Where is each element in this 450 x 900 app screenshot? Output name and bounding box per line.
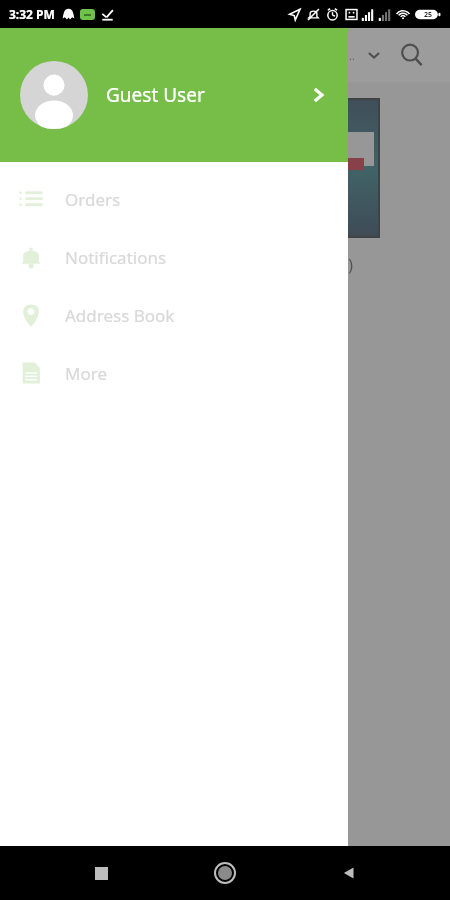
button[interactable]: Back [326,850,372,896]
button[interactable]: Search [395,38,429,72]
button[interactable]: Home [202,850,248,896]
button[interactable]: Notifications [0,228,348,286]
staticText: Address Book [65,304,175,327]
staticText: 25 [424,10,433,20]
staticText: Guest User [106,82,205,108]
staticText: 3:32 PM [9,6,55,22]
button[interactable]: Guest User [0,28,348,162]
staticText: More [65,362,107,385]
button[interactable]: Recents [78,850,124,896]
button[interactable]: Orders [0,170,348,228]
button[interactable]: Address Book [0,286,348,344]
staticText: Notifications [65,246,167,269]
staticText: Orders [65,188,121,211]
staticText: ) [348,253,354,276]
button[interactable]: More [0,344,348,402]
staticText: ... [346,48,355,63]
button[interactable]: Expand [363,44,385,66]
